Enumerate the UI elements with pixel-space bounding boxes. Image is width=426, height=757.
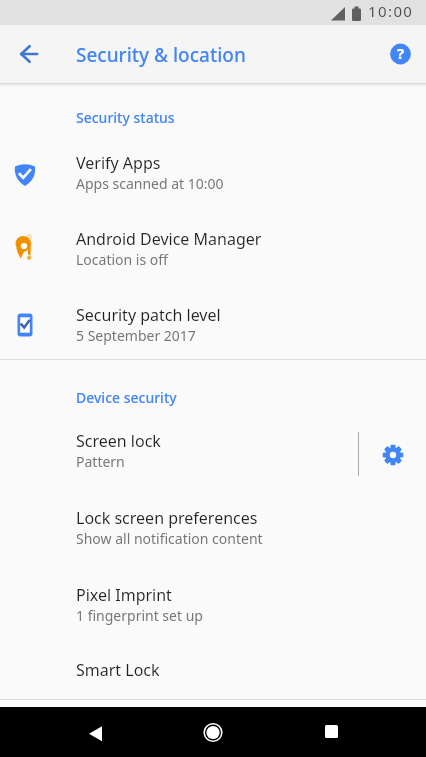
staticText: Security patch level — [76, 304, 221, 326]
button[interactable] — [315, 716, 347, 748]
staticText: 1 fingerprint set up — [76, 606, 203, 625]
staticText: Show all notification content — [76, 529, 263, 548]
staticText: Smart Lock — [76, 659, 160, 681]
button[interactable]: Pixel Imprint — [0, 568, 426, 644]
staticText: Location is off — [76, 250, 168, 269]
staticText: Lock screen preferences — [76, 507, 258, 529]
button[interactable]: Screen lock — [0, 416, 358, 492]
staticText: Pattern — [76, 452, 125, 471]
staticText: Security & location — [76, 42, 246, 68]
staticText: Security status — [76, 108, 175, 127]
button[interactable]: Lock screen preferences — [0, 492, 426, 568]
button[interactable] — [8, 41, 34, 67]
button[interactable]: Smart Lock — [0, 644, 426, 699]
button[interactable]: Verify Apps — [0, 138, 426, 214]
button[interactable] — [371, 433, 415, 477]
staticText: 10:00 — [368, 1, 414, 21]
button[interactable] — [78, 716, 110, 748]
staticText: Android Device Manager — [76, 228, 262, 250]
button[interactable] — [197, 716, 229, 748]
button[interactable]: ? — [388, 42, 412, 66]
staticText: Device security — [76, 388, 177, 407]
staticText: Verify Apps — [76, 152, 161, 174]
staticText: Pixel Imprint — [76, 584, 172, 606]
staticText: 5 September 2017 — [76, 326, 196, 345]
staticText: Apps scanned at 10:00 — [76, 174, 224, 193]
button[interactable]: Android Device Manager — [0, 214, 426, 290]
button[interactable]: Security patch level — [0, 290, 426, 366]
staticText: ? — [397, 43, 405, 63]
staticText: Screen lock — [76, 430, 161, 452]
